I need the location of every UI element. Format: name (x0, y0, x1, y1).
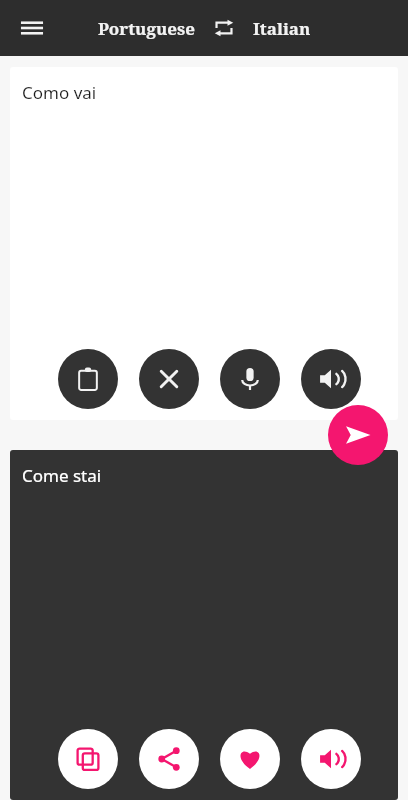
button[interactable]: Swap languages (209, 13, 239, 43)
button[interactable]: Clear text (139, 349, 199, 409)
button[interactable]: Portuguese (98, 17, 195, 40)
button[interactable]: Add to favourites (220, 729, 280, 789)
button[interactable]: Paste from clipboard (58, 349, 118, 409)
button[interactable]: Italian (253, 17, 311, 40)
button[interactable]: Share translation (139, 729, 199, 789)
staticText: Como vai (22, 81, 97, 104)
staticText: Portuguese (98, 17, 195, 40)
staticText: Come stai (22, 464, 102, 487)
staticText: Italian (253, 17, 311, 40)
button[interactable]: Listen (301, 349, 361, 409)
button[interactable]: Copy translation (58, 729, 118, 789)
button[interactable]: Translate (328, 405, 388, 465)
button[interactable]: Open navigation menu (10, 6, 54, 50)
button[interactable]: Speak to translate (220, 349, 280, 409)
button[interactable]: Listen (301, 729, 361, 789)
